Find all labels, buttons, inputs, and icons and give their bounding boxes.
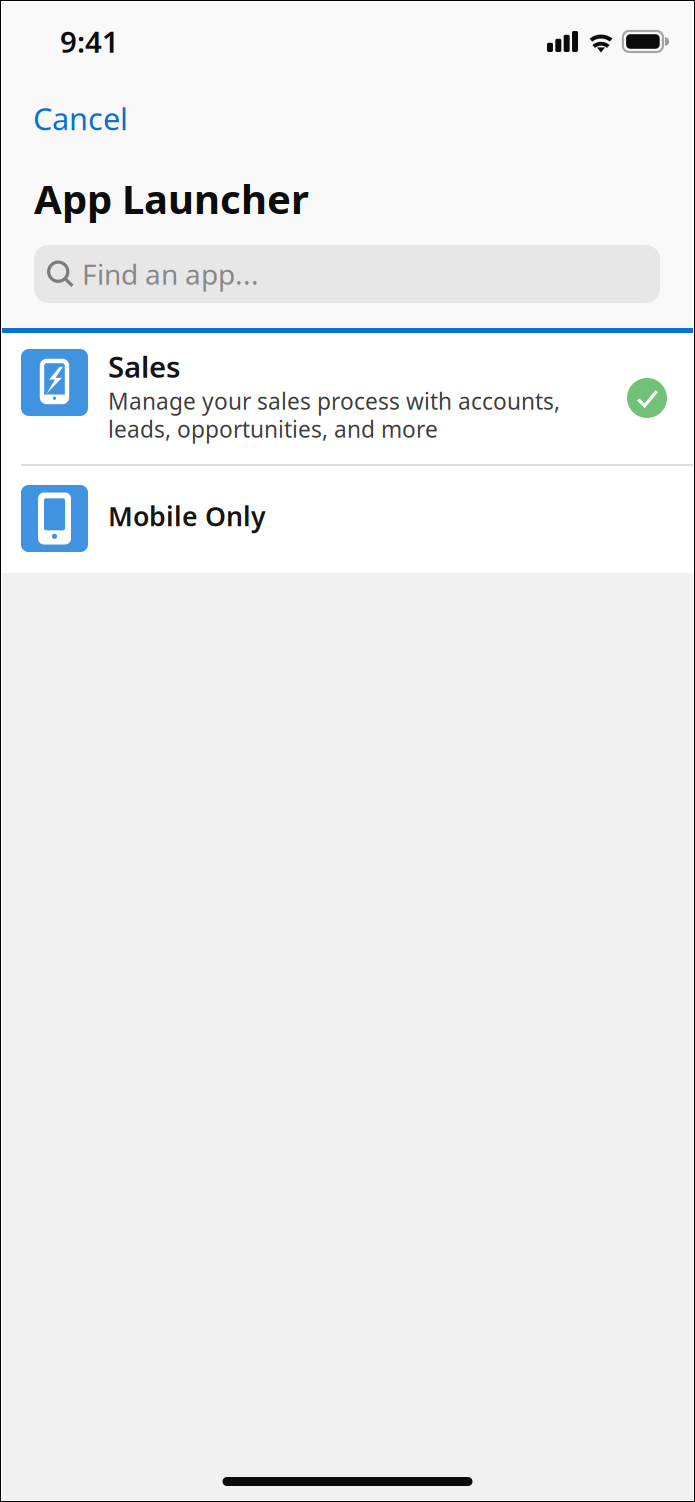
button[interactable]: Cancel [0,86,148,151]
button[interactable]: Find an app [34,245,660,303]
button[interactable]: Mobile Only [0,466,695,573]
staticText: Find an app... [82,255,259,293]
staticText: Manage your sales process with accounts, [108,386,560,416]
staticText: Sales [108,347,180,386]
staticText: Cancel [33,98,128,139]
button[interactable]: Sales [0,333,695,464]
staticText: App Launcher [34,172,309,225]
staticText: 9:41 [60,22,119,61]
staticText: leads, opportunities, and more [108,414,438,444]
staticText: Mobile Only [108,498,266,534]
